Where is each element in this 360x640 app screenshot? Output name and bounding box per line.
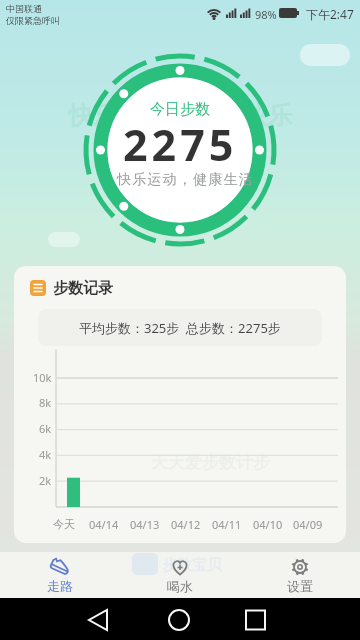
- button[interactable]: 走路: [0, 552, 120, 598]
- staticText: 6k: [39, 421, 52, 436]
- staticText: 快乐运动，健康生活: [117, 171, 254, 189]
- button[interactable]: [0, 598, 120, 640]
- staticText: 2k: [39, 473, 52, 488]
- staticText: 快乐运动每一天快乐: [68, 100, 293, 130]
- staticText: 设置: [287, 578, 313, 594]
- staticText: 步数记录: [53, 279, 113, 298]
- staticText: 走路: [47, 578, 73, 594]
- staticText: 天天爱步数计步: [151, 452, 270, 473]
- button[interactable]: 设置: [240, 552, 360, 598]
- staticText: 04/12: [171, 517, 201, 532]
- button[interactable]: 喝水: [120, 552, 240, 598]
- staticText: 04/10: [253, 517, 283, 532]
- staticText: 2275: [123, 115, 238, 167]
- staticText: 8k: [39, 395, 52, 410]
- staticText: 98%: [255, 7, 277, 22]
- staticText: 04/09: [293, 517, 323, 532]
- staticText: 中国联通: [6, 3, 42, 14]
- button[interactable]: [240, 598, 360, 640]
- staticText: 喝水: [167, 578, 193, 594]
- staticText: 04/13: [130, 517, 160, 532]
- staticText: 10k: [33, 370, 52, 385]
- staticText: 04/11: [212, 517, 242, 532]
- button[interactable]: [120, 598, 240, 640]
- staticText: 平均步数：325步 总步数：2275步: [79, 319, 281, 337]
- staticText: 步数宝贝: [162, 556, 222, 575]
- staticText: 4k: [39, 447, 52, 462]
- staticText: 下午2:47: [306, 6, 354, 22]
- staticText: 今天: [53, 517, 75, 531]
- staticText: 04/14: [89, 517, 119, 532]
- staticText: 仅限紧急呼叫: [6, 15, 60, 26]
- staticText: 今日步数: [150, 100, 210, 118]
